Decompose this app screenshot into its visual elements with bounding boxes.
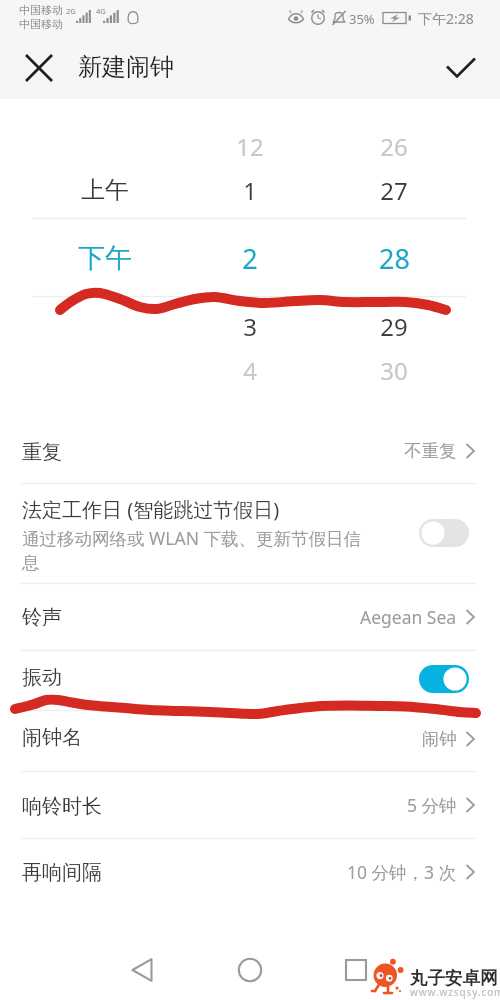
staticText: 闹钟名 [22, 725, 82, 750]
button[interactable]: 28 [332, 236, 456, 280]
button[interactable]: 法定工作日 (智能跳过节假日) [0, 483, 500, 583]
staticText: 下午 [78, 241, 132, 275]
staticText: www.wzsqsy.com [410, 985, 500, 999]
button[interactable]: 29 [332, 304, 456, 348]
button[interactable]: 12 [188, 124, 312, 168]
staticText: 1 [243, 174, 257, 207]
staticText: 4 [243, 354, 257, 387]
staticText: 2G [66, 6, 76, 16]
staticText: 法定工作日 (智能跳过节假日) [22, 496, 280, 523]
button[interactable]: 1 [188, 168, 312, 212]
button[interactable]: 响铃时长 [0, 771, 500, 838]
staticText: 27 [380, 174, 408, 207]
staticText: 29 [380, 310, 408, 343]
staticText: 中国移动 [19, 17, 63, 31]
staticText: 中国移动 [19, 3, 63, 17]
staticText: 铃声 [22, 605, 62, 630]
staticText: 10 分钟，3 次 [347, 860, 457, 884]
button[interactable]: Back [116, 944, 168, 996]
staticText: 26 [380, 130, 408, 163]
staticText: 再响间隔 [22, 860, 102, 885]
button[interactable]: Recents [330, 944, 382, 996]
button[interactable]: 闹钟名 [0, 707, 500, 771]
staticText: 丸子安卓网 [410, 967, 498, 989]
staticText: 2 [242, 240, 258, 277]
staticText: 新建闹钟 [78, 52, 174, 82]
staticText: 12 [236, 130, 264, 163]
button[interactable]: 4 [188, 348, 312, 392]
button[interactable]: 26 [332, 124, 456, 168]
staticText: 上午 [81, 175, 129, 205]
button[interactable]: Vibration on [419, 665, 469, 693]
staticText: 不重复 [404, 440, 457, 462]
staticText: 35% [349, 10, 375, 28]
staticText: 通过移动网络或 WLAN 下载、更新节假日信息 [22, 526, 374, 574]
staticText: 下午2:28 [418, 9, 474, 28]
staticText: 3 [243, 310, 257, 343]
button[interactable]: 30 [332, 348, 456, 392]
button[interactable]: Confirm [432, 39, 490, 97]
button[interactable]: Home [224, 944, 276, 996]
staticText: Aegean Sea [360, 605, 457, 629]
button[interactable]: 2 [188, 236, 312, 280]
staticText: 重复 [22, 440, 62, 465]
button[interactable]: 3 [188, 304, 312, 348]
button[interactable]: 振动 [0, 650, 500, 707]
button[interactable]: 重复 [0, 418, 500, 483]
staticText: 5 分钟 [407, 793, 457, 817]
button[interactable]: 上午 [43, 168, 167, 212]
button[interactable]: 27 [332, 168, 456, 212]
button[interactable]: 下午 [43, 236, 167, 280]
button[interactable]: 铃声 [0, 583, 500, 650]
staticText: 响铃时长 [22, 794, 102, 819]
staticText: 振动 [22, 665, 62, 690]
staticText: 闹钟 [422, 728, 457, 750]
staticText: 30 [380, 354, 408, 387]
staticText: 28 [379, 240, 410, 277]
button[interactable]: Close [10, 39, 68, 97]
button[interactable]: 再响间隔 [0, 838, 500, 905]
staticText: 4G [96, 6, 106, 16]
button[interactable]: Toggle off [419, 519, 469, 547]
